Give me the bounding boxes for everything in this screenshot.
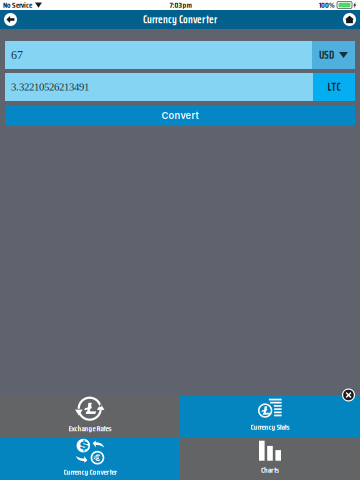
button[interactable]: $: [0, 437, 180, 480]
button[interactable]: Back: [2, 10, 19, 29]
staticText: LTC: [327, 79, 340, 95]
button[interactable]: USD: [312, 41, 355, 69]
staticText: Currency Converter: [143, 11, 217, 28]
staticText: 100%: [319, 0, 335, 11]
staticText: No Service: [3, 0, 32, 11]
staticText: Currency Stats: [250, 421, 289, 433]
button[interactable]: LTC: [313, 73, 355, 101]
button[interactable]: Close: [339, 386, 357, 404]
button[interactable]: Currency Stats: [180, 395, 360, 437]
button[interactable]: Home: [341, 10, 358, 29]
staticText: Convert: [161, 110, 198, 121]
button[interactable]: Exchange Rates: [0, 395, 180, 437]
staticText: Charts: [261, 464, 279, 476]
staticText: 7:03 pm: [169, 0, 191, 11]
staticText: Exchange Rates: [68, 422, 111, 435]
staticText: Currency Converter: [63, 466, 116, 478]
button[interactable]: Charts: [180, 437, 360, 480]
staticText: $: [79, 438, 88, 454]
staticText: 67: [11, 48, 23, 62]
button[interactable]: Convert: [5, 105, 355, 126]
staticText: 3.32210526213491: [11, 81, 89, 93]
staticText: USD: [319, 47, 334, 63]
